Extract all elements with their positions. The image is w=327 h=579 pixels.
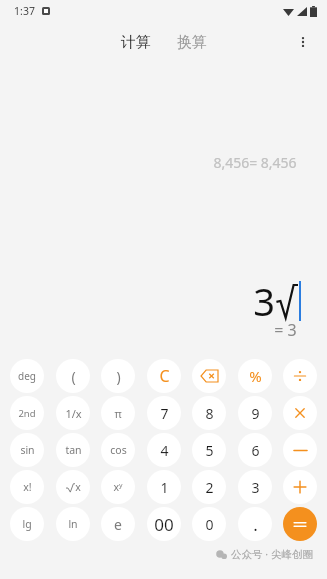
button[interactable]: sin — [10, 433, 44, 467]
staticText: 5 — [205, 441, 214, 460]
button[interactable]: 7 — [147, 396, 181, 430]
staticText: cos — [110, 443, 127, 457]
button[interactable]: xʸ — [101, 470, 135, 504]
staticText: 2nd — [18, 407, 36, 420]
staticText: x! — [23, 480, 32, 494]
staticText: 1:37 — [14, 4, 35, 18]
button[interactable]: 1 — [147, 470, 181, 504]
staticText: . — [253, 513, 258, 536]
staticText: sin — [20, 443, 35, 457]
button[interactable]: deg — [10, 359, 44, 393]
button[interactable] — [283, 396, 317, 430]
staticText: 计算 — [121, 33, 151, 52]
button[interactable]: 4 — [147, 433, 181, 467]
button[interactable]: 00 — [147, 507, 181, 541]
staticText: 6 — [251, 441, 260, 460]
button[interactable]: 2nd — [10, 396, 44, 430]
button[interactable]: x — [56, 470, 90, 504]
staticText: 3 — [253, 275, 275, 327]
staticText: x — [75, 480, 81, 494]
staticText: 9 — [251, 404, 260, 423]
button[interactable]: 6 — [238, 433, 272, 467]
staticText: xʸ — [113, 480, 123, 494]
staticText: tan — [65, 443, 82, 457]
staticText: C — [159, 365, 170, 387]
button[interactable]: 9 — [238, 396, 272, 430]
button[interactable]: 5 — [192, 433, 226, 467]
staticText: 0 — [205, 515, 214, 534]
button[interactable] — [283, 470, 317, 504]
button[interactable]: 1/x — [56, 396, 90, 430]
button[interactable] — [283, 507, 317, 541]
staticText: ) — [116, 367, 121, 386]
button[interactable]: ln — [56, 507, 90, 541]
staticText: 8 — [205, 404, 214, 423]
button[interactable]: % — [238, 359, 272, 393]
button[interactable]: 3 — [238, 470, 272, 504]
button[interactable]: 计算 — [115, 29, 157, 56]
staticText: 7 — [160, 404, 169, 423]
staticText: 4 — [160, 441, 169, 460]
button[interactable]: 8 — [192, 396, 226, 430]
button[interactable]: Backspace — [192, 359, 226, 393]
staticText: lg — [22, 517, 32, 531]
staticText: % — [249, 366, 262, 386]
button[interactable]: π — [101, 396, 135, 430]
button[interactable] — [283, 359, 317, 393]
button[interactable]: 换算 — [171, 29, 213, 56]
button[interactable]: ( — [56, 359, 90, 393]
staticText: 8,456= 8,456 — [213, 153, 297, 172]
button[interactable] — [283, 433, 317, 467]
button[interactable]: More options — [289, 28, 317, 56]
staticText: 公众号 · 尖峰创圈 — [231, 547, 313, 561]
staticText: ( — [71, 367, 76, 386]
staticText: e — [114, 515, 122, 534]
button[interactable]: tan — [56, 433, 90, 467]
staticText: 2 — [205, 478, 214, 497]
button[interactable]: . — [238, 507, 272, 541]
staticText: π — [114, 406, 122, 421]
staticText: 1 — [160, 478, 169, 497]
button[interactable]: lg — [10, 507, 44, 541]
button[interactable]: ) — [101, 359, 135, 393]
button[interactable]: 8,456= 8,456 — [213, 153, 297, 172]
button[interactable]: cos — [101, 433, 135, 467]
staticText: 1/x — [65, 406, 82, 421]
button[interactable]: 0 — [192, 507, 226, 541]
button[interactable]: e — [101, 507, 135, 541]
button[interactable]: 2 — [192, 470, 226, 504]
staticText: deg — [18, 369, 36, 383]
staticText: 00 — [154, 513, 174, 536]
staticText: 3 — [251, 478, 260, 497]
staticText: = 3 — [274, 319, 297, 341]
staticText: 换算 — [177, 33, 207, 52]
button[interactable]: C — [147, 359, 181, 393]
staticText: ln — [68, 517, 78, 531]
button[interactable]: x! — [10, 470, 44, 504]
